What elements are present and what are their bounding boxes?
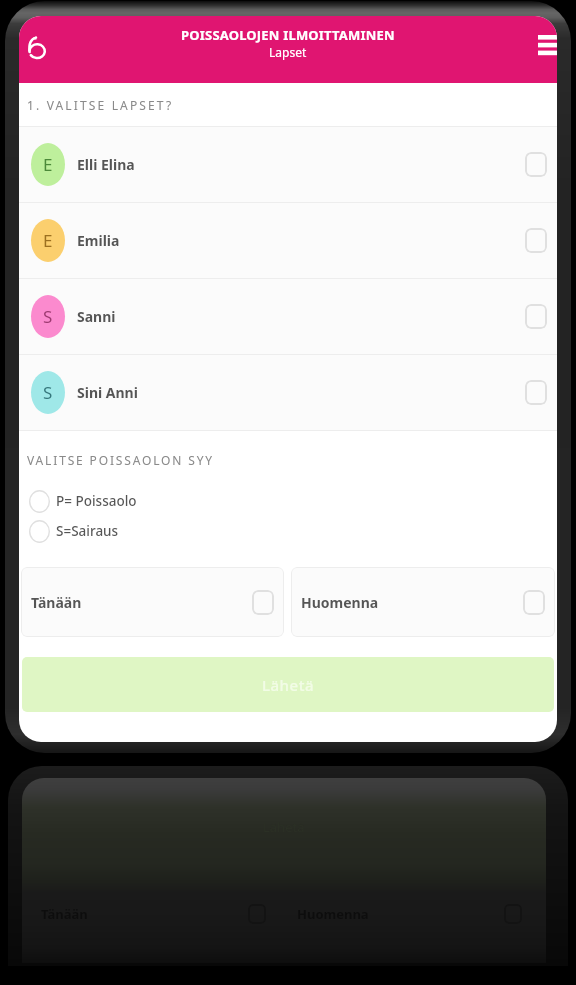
staticText: POISSAOLOJEN ILMOITTAMINEN [181,26,395,44]
staticText: Tänään [31,593,82,612]
staticText: S=Sairaus [56,522,119,540]
button[interactable]: E [19,203,557,278]
staticText: S [43,305,53,328]
button[interactable]: Tänään [21,567,284,637]
staticText: VALITSE POISSAOLON SYY [27,452,215,468]
staticText: E [43,229,53,252]
staticText: Lapset [269,44,307,60]
staticText: Sini Anni [77,383,138,402]
button[interactable]: Menu [531,28,557,62]
staticText: Emilia [77,231,120,250]
staticText: 1. VALITSE LAPSET? [27,97,174,113]
staticText: Huomenna [301,593,379,612]
staticText: S [43,381,53,404]
button[interactable]: Huomenna [291,567,555,637]
staticText: Sanni [77,307,116,326]
staticText: P= Poissaolo [56,492,137,510]
staticText: Tänään [41,905,88,923]
button[interactable]: S [19,279,557,354]
button[interactable]: S [19,355,557,430]
button[interactable]: E [19,127,557,202]
button[interactable]: Back [19,30,53,64]
staticText: Lähetä [262,675,314,695]
button[interactable]: S=Sairaus [29,518,119,544]
button[interactable]: P= Poissaolo [29,488,137,514]
staticText: E [43,153,53,176]
staticText: Huomenna [297,905,369,923]
staticText: Elli Elina [77,155,135,174]
button[interactable]: Lähetä [22,657,554,712]
